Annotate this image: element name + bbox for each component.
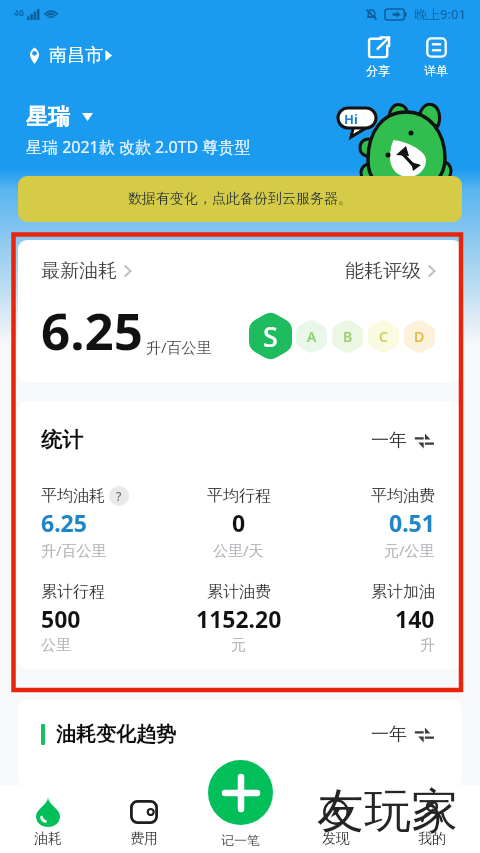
staticText: 升/百公里 [146,337,212,357]
button[interactable]: Details [424,36,448,78]
staticText: 140 [395,603,435,634]
staticText: 累计加油 [371,582,435,602]
staticText: 平均油耗 [41,486,105,506]
staticText: 升 [420,636,435,655]
staticText: 500 [41,603,81,634]
staticText: 费用 [130,830,158,848]
staticText: 发现 [322,830,350,848]
staticText: 统计 [41,427,83,453]
button[interactable]: 我的 [384,785,480,853]
staticText: 数据有变化，点此备份到云服务器。 [128,190,352,208]
staticText: Hi [344,110,358,128]
button[interactable]: 能耗评级 [345,259,435,283]
staticText: 分享 [366,63,390,78]
staticText: 6.25 [41,507,87,538]
staticText: ? [116,488,122,504]
button[interactable]: 发现 [288,785,384,853]
staticText: 油耗变化趋势 [56,722,176,747]
button[interactable]: 最新油耗 [41,259,131,283]
staticText: 友玩家 [317,782,458,841]
staticText: 0 [232,507,246,538]
staticText: 一年 [371,429,407,452]
staticText: 公里/天 [213,540,264,560]
button[interactable]: 一年 [371,429,435,452]
button[interactable]: 数据有变化，点此备份到云服务器。 [18,176,462,222]
staticText: 平均行程 [207,486,271,506]
staticText: 记一笔 [221,832,260,848]
staticText: 油耗 [34,830,62,848]
staticText: D [414,327,425,346]
staticText: 星瑞 [26,103,70,131]
staticText: 累计行程 [41,582,105,602]
staticText: 南昌市 [49,44,103,67]
button[interactable]: Share [366,36,390,78]
staticText: 公里 [41,636,71,655]
button[interactable]: 油耗 [0,785,96,853]
staticText: 升/百公里 [41,540,107,560]
button[interactable]: 南昌市 [28,36,113,67]
staticText: 晚上9:01 [414,5,466,23]
staticText: 0.51 [389,507,435,538]
staticText: C [379,327,388,346]
button[interactable]: 记一笔 [208,760,273,825]
staticText: 一年 [371,723,407,746]
staticText: 6.25 [41,295,143,364]
staticText: 能耗评级 [345,259,421,283]
button[interactable]: 费用 [96,785,192,853]
staticText: 平均油费 [371,486,435,506]
staticText: 我的 [418,830,446,848]
staticText: 1152.20 [196,603,282,634]
staticText: 详单 [424,63,448,78]
staticText: B [343,327,353,346]
staticText: 元/公里 [384,540,435,560]
staticText: 累计油费 [207,582,271,602]
staticText: 最新油耗 [41,259,117,283]
staticText: 元 [231,636,246,655]
button[interactable]: 一年 [371,723,435,746]
staticText: S [263,318,278,355]
staticText: A [307,327,317,346]
staticText: 星瑞 2021款 改款 2.0TD 尊贵型 [26,136,251,158]
staticText: 4G [14,7,25,18]
button[interactable]: 星瑞 [26,103,93,131]
